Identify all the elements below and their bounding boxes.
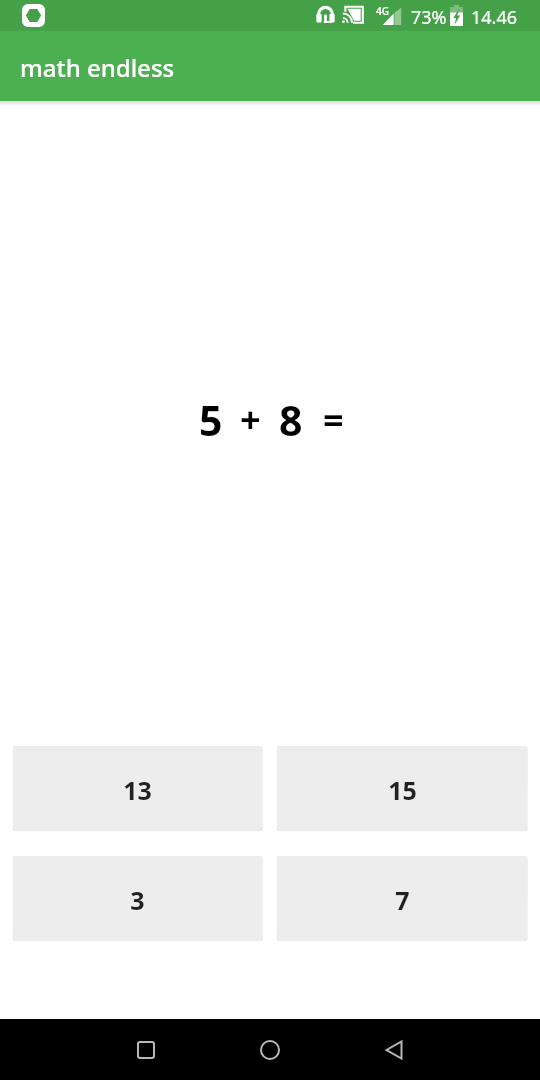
staticText: 5 bbox=[199, 392, 223, 448]
staticText: 8 bbox=[279, 392, 303, 448]
staticText: 15 bbox=[388, 773, 417, 807]
staticText: 14.46 bbox=[471, 5, 518, 30]
button[interactable]: Home bbox=[243, 1019, 297, 1080]
staticText: 13 bbox=[123, 773, 152, 807]
button[interactable]: Recents bbox=[119, 1019, 173, 1080]
staticText: 7 bbox=[395, 883, 410, 917]
staticText: + bbox=[240, 395, 261, 444]
staticText: 3 bbox=[130, 883, 145, 917]
staticText: 4G bbox=[376, 4, 389, 18]
staticText: math endless bbox=[20, 51, 175, 84]
staticText: 73% bbox=[411, 5, 447, 30]
button[interactable]: 15 bbox=[277, 746, 527, 830]
button[interactable]: 7 bbox=[277, 856, 527, 940]
button[interactable]: 3 bbox=[13, 856, 262, 940]
button[interactable]: 13 bbox=[13, 746, 262, 830]
button[interactable]: Back bbox=[367, 1019, 421, 1080]
staticText: = bbox=[323, 395, 344, 444]
